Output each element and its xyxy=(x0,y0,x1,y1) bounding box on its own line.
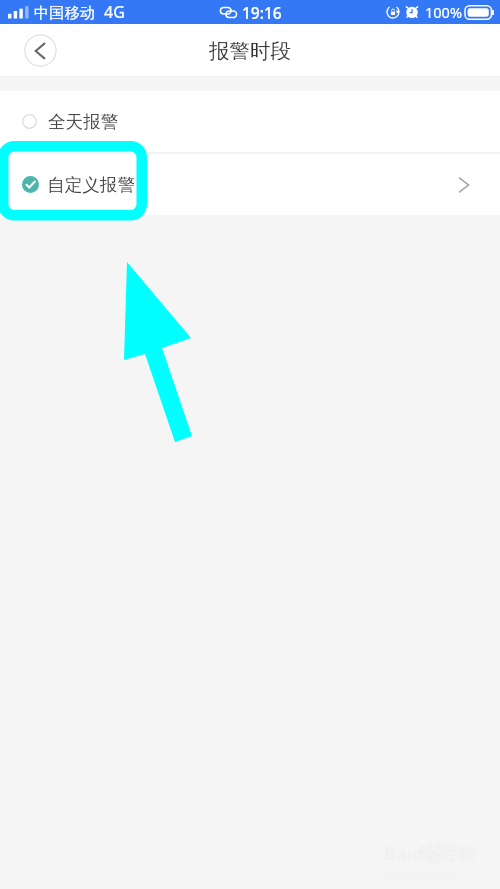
button[interactable]: Back xyxy=(24,34,57,67)
staticText: 全天报警 xyxy=(48,111,119,133)
staticText: 报警时段 xyxy=(209,38,291,64)
staticText: 中国移动 xyxy=(34,3,95,22)
button[interactable]: 自定义报警 xyxy=(0,154,500,215)
staticText: 自定义报警 xyxy=(47,174,135,196)
button[interactable]: 全天报警 xyxy=(0,91,500,152)
staticText: 100% xyxy=(425,2,462,22)
staticText: 4G xyxy=(104,1,125,23)
staticText: 19:16 xyxy=(242,2,282,23)
